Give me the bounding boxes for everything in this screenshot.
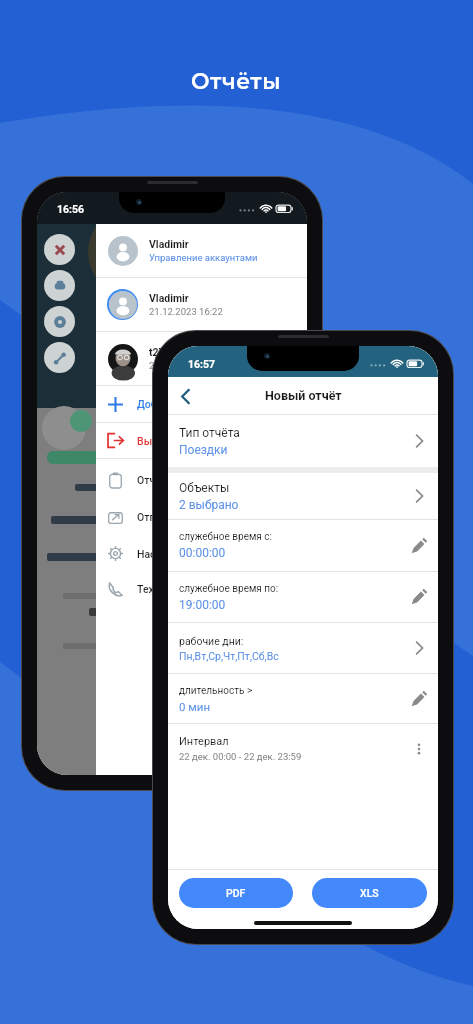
button[interactable]: Настройки	[96, 536, 307, 571]
staticText: Добавить	[137, 398, 186, 410]
button[interactable]: Map control	[44, 342, 75, 373]
staticText: Vladimir	[149, 292, 189, 304]
staticText: Объекты	[179, 481, 230, 495]
button[interactable]: t27	[96, 332, 307, 385]
button[interactable]: PDF	[179, 878, 293, 908]
button[interactable]: Map control	[44, 306, 75, 337]
staticText: 19:00:00	[179, 598, 226, 612]
staticText: Отчёты	[191, 68, 282, 95]
button[interactable]: Объекты	[168, 473, 438, 519]
staticText: 2 выбрано	[179, 498, 239, 512]
button[interactable]: Техподдержка	[96, 571, 307, 607]
button[interactable]: XLS	[312, 878, 427, 908]
button[interactable]: Отчёты	[96, 462, 307, 498]
staticText: PDF	[226, 887, 246, 899]
staticText: XLS	[360, 887, 379, 899]
staticText: Настройки	[137, 548, 191, 560]
button[interactable]: Vladimir	[96, 224, 307, 277]
button[interactable]: Map control	[44, 270, 75, 301]
staticText: Тип отчёта	[179, 426, 240, 440]
button[interactable]: Добавить	[96, 386, 307, 422]
staticText: 21.12.2023 16:22	[149, 306, 223, 317]
staticText: Интервал	[179, 735, 229, 748]
button[interactable]: рабочие дни:	[168, 623, 438, 673]
staticText: служебное время с:	[179, 531, 272, 543]
button[interactable]: Back	[168, 379, 202, 413]
button[interactable]: Выйти	[96, 423, 307, 458]
staticText: t27	[149, 346, 165, 358]
staticText: Новый отчёт	[265, 388, 342, 403]
button[interactable]: длительность >	[168, 674, 438, 723]
staticText: рабочие дни:	[179, 635, 244, 647]
staticText: Отправить	[137, 511, 190, 523]
button[interactable]: Vladimir	[96, 278, 307, 331]
button[interactable]: служебное время с:	[168, 520, 438, 571]
staticText: Vladimir	[149, 238, 189, 250]
staticText: Поездки	[179, 443, 228, 457]
staticText: 0 мин	[179, 700, 211, 713]
staticText: Отчёты	[137, 474, 175, 486]
staticText: служебное время по:	[179, 583, 279, 595]
staticText: Выйти	[137, 435, 170, 447]
staticText: Управление аккаунтами	[149, 252, 258, 263]
button[interactable]: Map control	[44, 234, 75, 265]
button[interactable]: служебное время по:	[168, 572, 438, 622]
staticText: 21.12.2023	[149, 360, 197, 371]
staticText: Техподдержка	[137, 583, 210, 595]
staticText: 16:56	[57, 203, 85, 215]
staticText: 00:00:00	[179, 546, 226, 560]
staticText: 22 дек. 00:00 - 22 дек. 23:59	[179, 751, 302, 762]
staticText: Пн,Вт,Ср,Чт,Пт,Сб,Вс	[179, 650, 279, 662]
button[interactable]: Тип отчёта	[168, 415, 438, 467]
button[interactable]: Интервал	[168, 724, 438, 773]
staticText: длительность >	[179, 685, 253, 697]
button[interactable]: Отправить	[96, 498, 307, 536]
staticText: 16:57	[188, 358, 216, 370]
